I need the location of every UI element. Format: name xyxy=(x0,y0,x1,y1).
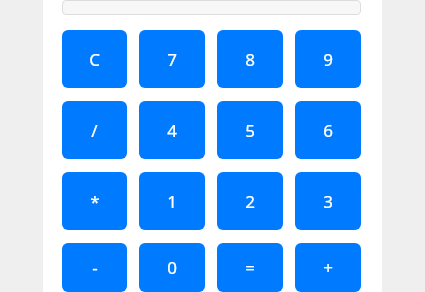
button[interactable]: 8 xyxy=(217,30,283,88)
button[interactable]: C xyxy=(62,30,127,88)
staticText: + xyxy=(323,256,333,279)
staticText: = xyxy=(245,256,255,279)
button[interactable]: 6 xyxy=(295,101,361,159)
staticText: 5 xyxy=(245,119,255,142)
button[interactable]: 2 xyxy=(217,172,283,230)
button[interactable]: 7 xyxy=(139,30,205,88)
staticText: 9 xyxy=(323,48,333,71)
staticText: 6 xyxy=(323,119,333,142)
staticText: * xyxy=(90,190,100,213)
button[interactable]: 5 xyxy=(217,101,283,159)
staticText: 1 xyxy=(167,190,177,213)
staticText: 7 xyxy=(167,48,177,71)
staticText: 8 xyxy=(245,48,255,71)
staticText: C xyxy=(89,48,100,71)
button[interactable]: = xyxy=(217,243,283,292)
button[interactable]: 4 xyxy=(139,101,205,159)
button[interactable]: 3 xyxy=(295,172,361,230)
button[interactable]: 1 xyxy=(139,172,205,230)
staticText: / xyxy=(91,119,98,142)
staticText: 3 xyxy=(323,190,333,213)
button[interactable]: / xyxy=(62,101,127,159)
button[interactable]: - xyxy=(62,243,127,292)
staticText: 2 xyxy=(245,190,255,213)
staticText: - xyxy=(92,256,98,279)
staticText: 4 xyxy=(167,119,177,142)
button[interactable]: 9 xyxy=(295,30,361,88)
button[interactable]: + xyxy=(295,243,361,292)
button[interactable]: 0 xyxy=(139,243,205,292)
button[interactable]: * xyxy=(62,172,127,230)
staticText: 0 xyxy=(167,256,177,279)
